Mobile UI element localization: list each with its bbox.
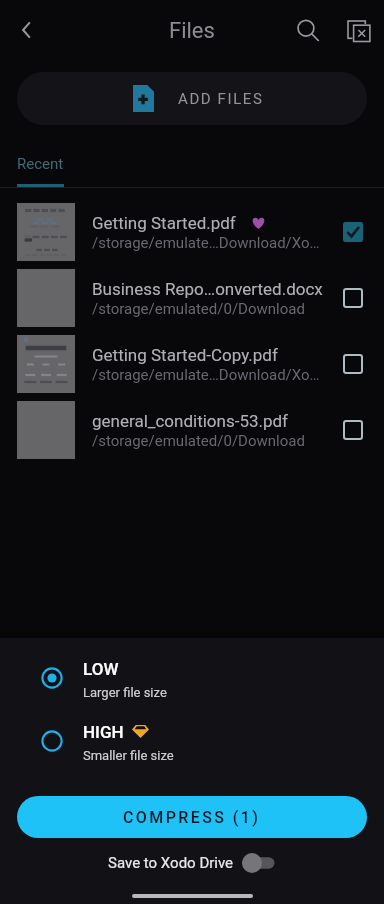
button[interactable]: Search: [285, 8, 329, 52]
staticText: Smaller file size: [83, 748, 174, 763]
staticText: Larger file size: [83, 685, 167, 700]
staticText: /storage/emulated/0/Download: [92, 300, 305, 318]
staticText: ADD FILES: [178, 90, 264, 108]
button[interactable]: Back: [7, 10, 47, 50]
button[interactable]: general_conditions-53.pdf: [0, 397, 384, 463]
button[interactable]: COMPRESS (1): [17, 796, 367, 838]
staticText: LOW: [83, 659, 119, 679]
button[interactable]: HIGH: [0, 722, 384, 766]
staticText: COMPRESS (1): [123, 808, 261, 827]
button[interactable]: Business Repo…onverted.docx: [0, 265, 384, 331]
button[interactable]: Save to Xodo Drive: [242, 852, 276, 874]
button[interactable]: ADD FILES: [17, 72, 367, 125]
staticText: Business Repo…onverted.docx: [92, 279, 323, 299]
button[interactable]: LOW: [0, 659, 384, 703]
button[interactable]: Select file: [330, 209, 376, 255]
staticText: Recent: [17, 155, 64, 173]
staticText: Getting Started.pdf: [92, 213, 236, 233]
staticText: HIGH: [83, 722, 124, 742]
button[interactable]: Getting Started-Copy.pdf: [0, 331, 384, 397]
button[interactable]: Getting Started.pdf: [0, 199, 384, 265]
staticText: general_conditions-53.pdf: [92, 411, 289, 431]
button[interactable]: Deselect all: [337, 11, 381, 55]
staticText: /storage/emulated/0/Download: [92, 432, 305, 450]
button[interactable]: Recent: [0, 140, 81, 187]
button[interactable]: Select file: [330, 341, 376, 387]
staticText: /storage/emulate…Download/Xodo: [92, 366, 326, 384]
staticText: Save to Xodo Drive: [108, 854, 234, 872]
staticText: Files: [169, 18, 215, 44]
button[interactable]: Select file: [330, 407, 376, 453]
staticText: Getting Started-Copy.pdf: [92, 345, 278, 365]
staticText: /storage/emulate…Download/Xodo: [92, 234, 326, 252]
button[interactable]: Select file: [330, 275, 376, 321]
